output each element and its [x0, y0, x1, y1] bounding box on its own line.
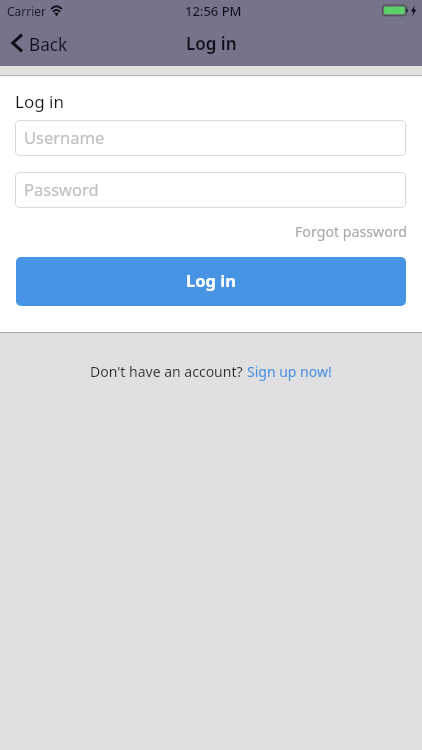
button[interactable]: Log in	[16, 257, 406, 306]
staticText: Log in	[15, 90, 64, 113]
staticText: Back	[29, 33, 68, 56]
other: Battery charging	[382, 4, 416, 17]
staticText: Username	[24, 126, 105, 148]
button[interactable]: Back	[0, 21, 78, 63]
other: Wi-Fi signal	[50, 3, 65, 17]
staticText: Carrier	[7, 3, 47, 19]
button[interactable]: Password	[15, 172, 406, 208]
staticText: Sign up now!	[247, 362, 332, 381]
staticText: Log in	[186, 269, 236, 291]
staticText: Forgot password	[295, 222, 408, 241]
button[interactable]: Sign up now!	[247, 359, 332, 383]
staticText: Don't have an account?	[90, 362, 247, 381]
staticText: 12:56 PM	[185, 2, 242, 20]
staticText: Log in	[186, 32, 237, 55]
staticText: Password	[24, 178, 99, 200]
button[interactable]: Forgot password	[0, 218, 422, 244]
button[interactable]: Username	[15, 120, 406, 156]
